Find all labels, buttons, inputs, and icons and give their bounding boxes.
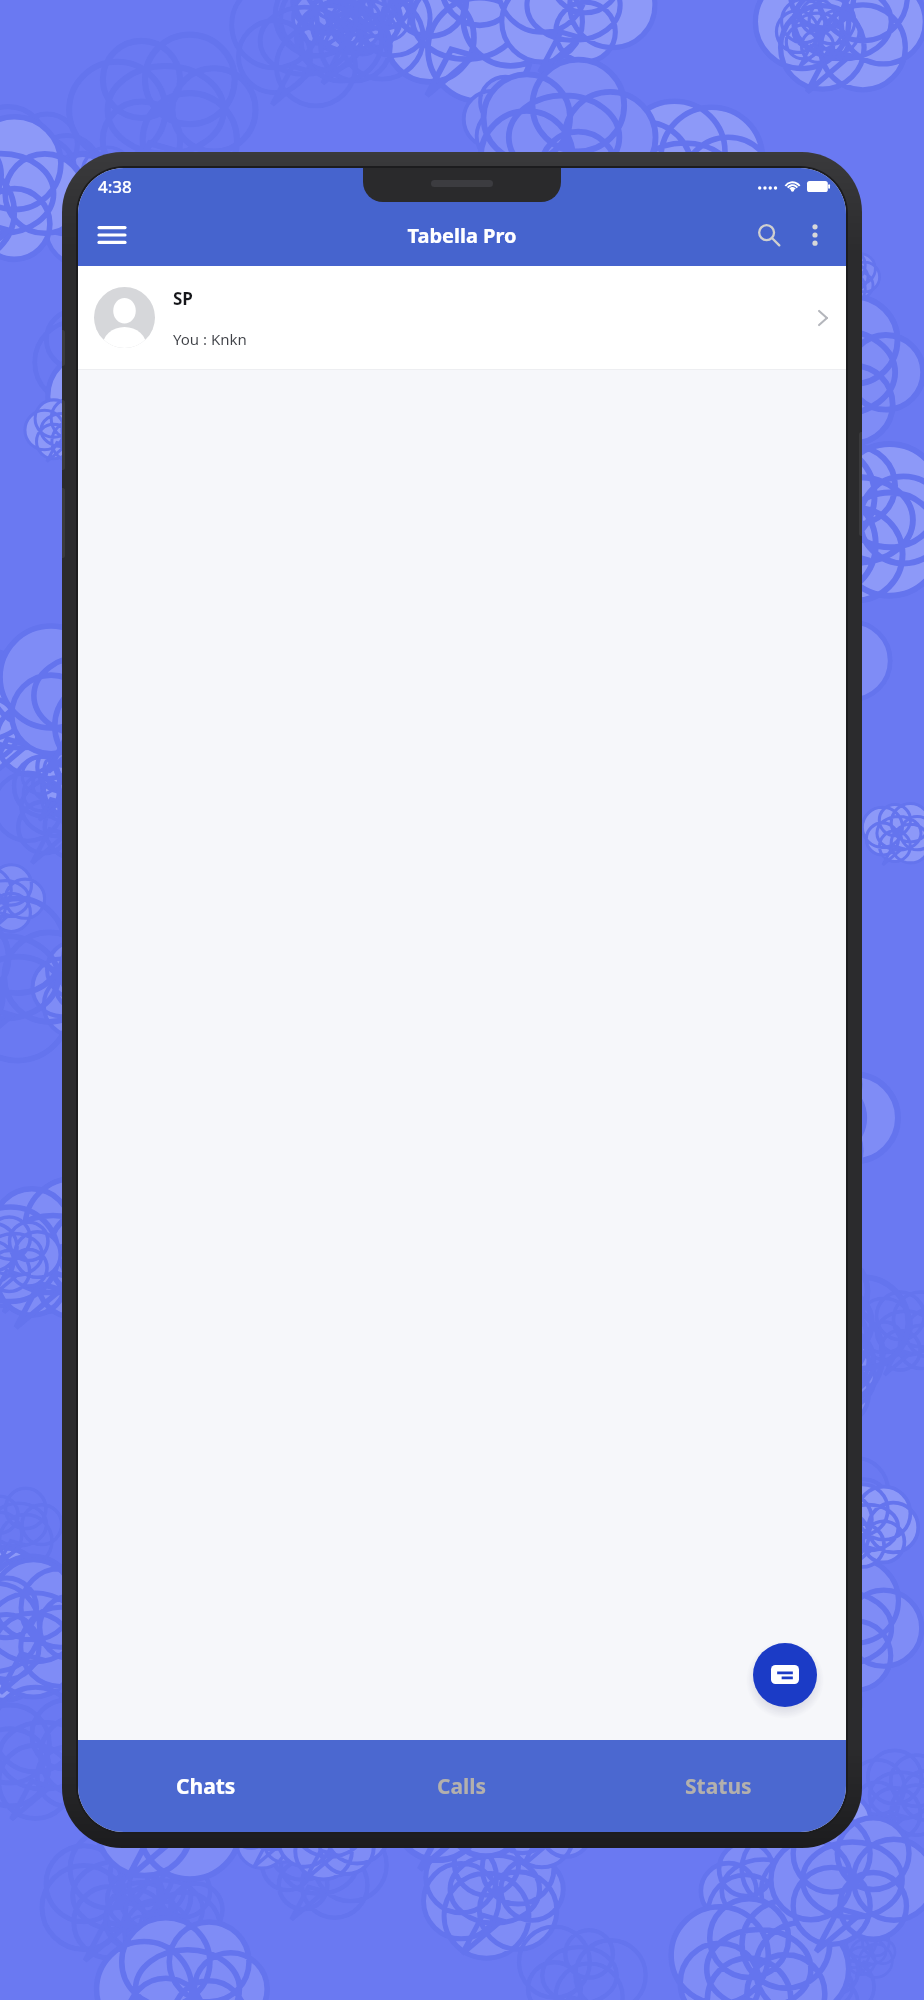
button[interactable]: Calls bbox=[334, 1740, 590, 1832]
staticText: Calls bbox=[437, 1772, 487, 1801]
staticText: 4:38 bbox=[98, 175, 132, 198]
button[interactable]: More options bbox=[792, 212, 838, 258]
button[interactable]: Status bbox=[590, 1740, 846, 1832]
staticText: SP bbox=[173, 287, 193, 310]
staticText: Chats bbox=[176, 1772, 236, 1801]
button[interactable]: New chat bbox=[753, 1643, 817, 1707]
button[interactable]: Search bbox=[746, 212, 792, 258]
button[interactable]: Open navigation menu bbox=[88, 211, 136, 259]
button[interactable]: SP bbox=[78, 266, 846, 369]
staticText: You : Knkn bbox=[173, 329, 247, 349]
button[interactable]: Chats bbox=[78, 1740, 334, 1832]
staticText: Tabella Pro bbox=[407, 222, 517, 249]
staticText: Status bbox=[685, 1772, 752, 1801]
